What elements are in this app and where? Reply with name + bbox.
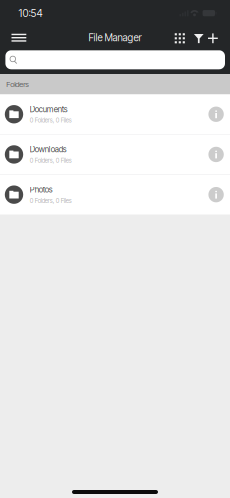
button[interactable]: Filter [192, 26, 206, 50]
staticText: 10:54 [18, 7, 42, 19]
button[interactable]: Grid view [168, 26, 192, 50]
button[interactable]: Add [206, 26, 220, 50]
staticText: Documents [30, 104, 68, 114]
button[interactable]: Photos [0, 175, 230, 214]
staticText: Folders [6, 80, 29, 89]
staticText: 0 Folders, 0 Files [30, 157, 72, 164]
staticText: 0 Folders, 0 Files [30, 117, 72, 124]
staticText: Downloads [30, 145, 67, 154]
button[interactable]: Menu [6, 26, 32, 50]
button[interactable]: Documents [0, 94, 230, 134]
button[interactable]: Search [5, 50, 225, 69]
button[interactable]: Downloads [0, 135, 230, 174]
staticText: 0 Folders, 0 Files [30, 197, 72, 204]
staticText: Photos [30, 185, 53, 194]
staticText: File Manager [88, 32, 141, 43]
